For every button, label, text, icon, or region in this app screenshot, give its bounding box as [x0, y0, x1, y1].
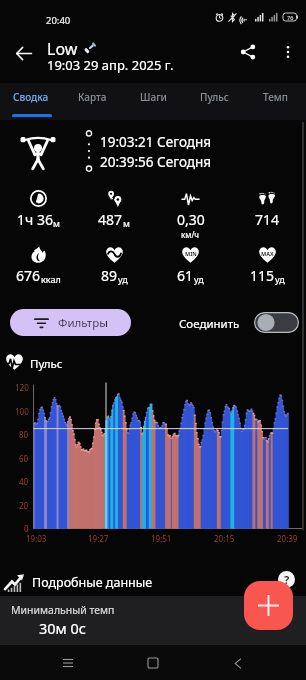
staticText: 120: [15, 382, 29, 393]
staticText: 19:03 29 апр. 2025 г.: [47, 56, 174, 74]
staticText: Low: [47, 38, 78, 60]
button[interactable]: MIN: [152, 238, 229, 294]
staticText: 100: [15, 406, 29, 417]
staticText: Карта: [78, 90, 107, 104]
staticText: км/ч: [181, 229, 200, 238]
button[interactable]: MAX: [229, 238, 306, 294]
button[interactable]: Карта: [62, 83, 123, 120]
staticText: 80: [19, 429, 29, 440]
button[interactable]: Share: [231, 35, 265, 69]
staticText: 20:15: [214, 533, 235, 544]
staticText: уд: [118, 273, 128, 285]
staticText: 115: [250, 266, 275, 285]
staticText: Минимальный темп: [11, 603, 115, 617]
staticText: MIN: [185, 250, 197, 257]
staticText: 20:39: [277, 533, 298, 544]
button[interactable]: Фильтры: [10, 309, 131, 336]
staticText: 676: [16, 266, 41, 285]
button[interactable]: Шаги: [123, 83, 184, 120]
staticText: 20: [19, 500, 29, 511]
button[interactable]: 89: [76, 238, 152, 294]
button[interactable]: Темп: [245, 83, 306, 120]
staticText: уд: [275, 273, 285, 285]
staticText: 19:51: [151, 533, 172, 544]
staticText: Фильтры: [58, 315, 108, 331]
button[interactable]: 714: [229, 182, 306, 238]
staticText: Темп: [263, 90, 288, 104]
staticText: 19:03: [26, 533, 47, 544]
staticText: 1ч 36: [17, 210, 53, 229]
staticText: Подробные данные: [32, 574, 153, 591]
staticText: 60: [19, 453, 29, 464]
staticText: Сводка: [13, 90, 49, 104]
button[interactable]: Help: [278, 571, 295, 588]
staticText: MAX: [261, 250, 274, 257]
staticText: м: [123, 217, 130, 229]
button[interactable]: 676: [0, 238, 76, 294]
button[interactable]: 0,30: [152, 182, 229, 238]
staticText: 19:27: [88, 533, 109, 544]
staticText: 19:03:21 Сегодня: [100, 133, 212, 151]
button[interactable]: Соединить: [254, 312, 299, 333]
button[interactable]: Пульс: [184, 83, 245, 120]
button[interactable]: More options: [271, 35, 305, 69]
staticText: 61: [177, 266, 194, 285]
staticText: Соединить: [179, 316, 240, 332]
staticText: 20:39:56 Сегодня: [100, 153, 212, 171]
staticText: м: [53, 217, 60, 229]
button[interactable]: Сводка: [0, 83, 62, 120]
button[interactable]: 487: [76, 182, 152, 238]
staticText: уд: [194, 273, 204, 285]
button[interactable]: 1ч 36: [0, 182, 76, 238]
staticText: ?: [284, 572, 290, 587]
staticText: 487: [98, 210, 123, 229]
button[interactable]: Back: [221, 646, 255, 680]
staticText: Пульс: [30, 356, 63, 372]
staticText: Пульс: [200, 90, 229, 104]
button[interactable]: Add: [244, 581, 293, 630]
staticText: 40: [19, 476, 29, 487]
button[interactable]: Back: [6, 36, 40, 70]
staticText: 89: [101, 266, 118, 285]
staticText: Шаги: [140, 90, 167, 104]
staticText: 30м 0с: [39, 618, 86, 638]
staticText: 0,30: [177, 210, 205, 229]
staticText: 20:40: [46, 14, 71, 27]
button[interactable]: Recents: [51, 646, 85, 680]
staticText: ккал: [41, 273, 61, 285]
staticText: 0: [24, 523, 29, 534]
button[interactable]: Home: [136, 646, 170, 680]
staticText: 76: [287, 14, 294, 21]
staticText: 714: [255, 210, 280, 229]
